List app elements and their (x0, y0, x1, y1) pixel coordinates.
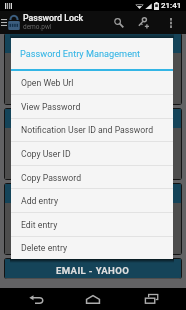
staticText: Open Web Url (21, 78, 74, 88)
staticText: Notification User ID and Password (21, 125, 154, 135)
staticText: Edit entry (21, 220, 58, 230)
button[interactable]: View Password (11, 95, 173, 119)
button[interactable]: Add entry (11, 189, 173, 213)
staticText: Copy User ID (21, 149, 71, 159)
button[interactable]: Edit entry (11, 213, 173, 237)
button[interactable]: EMAIL - YAHOO (4, 258, 182, 279)
button[interactable]: Search (106, 11, 131, 34)
staticText: WORK - GMAIL (58, 40, 128, 51)
button[interactable]: More options (156, 11, 186, 34)
button[interactable]: BANK - ONLINE (4, 183, 182, 255)
button[interactable]: Home (71, 288, 115, 310)
staticText: •••••••• (12, 72, 34, 81)
staticText: user@example.com (12, 209, 83, 218)
staticText: HOME ROUTER (58, 115, 128, 126)
staticText: View Password (21, 102, 81, 112)
staticText: Copy Password (21, 173, 82, 183)
button[interactable]: Delete entry (11, 236, 173, 260)
staticText: •••••••• (12, 147, 34, 156)
staticText: user@example.com (12, 134, 83, 143)
button[interactable]: Recent apps (129, 288, 173, 310)
staticText: Password Lock (23, 13, 84, 23)
staticText: BANK - ONLINE (57, 190, 130, 201)
button[interactable]: Open navigation drawer (0, 11, 8, 34)
staticText: Add entry (21, 196, 58, 206)
button[interactable]: HOME ROUTER (4, 108, 182, 180)
staticText: •••••••• (12, 222, 34, 231)
staticText: Password Entry Management (20, 48, 141, 59)
button[interactable]: Copy Password (11, 166, 173, 190)
button[interactable]: Back (14, 288, 58, 310)
staticText: demo.pwl (23, 23, 52, 31)
button[interactable]: Notification User ID and Password (11, 118, 173, 142)
button[interactable]: Copy User ID (11, 142, 173, 166)
button[interactable]: WORK - GMAIL (4, 33, 182, 105)
staticText: Delete entry (21, 243, 68, 253)
staticText: 21:41 (161, 1, 182, 10)
button[interactable]: Add password entry (131, 11, 156, 34)
staticText: EMAIL - YAHOO (56, 265, 130, 276)
button[interactable]: Open Web Url (11, 71, 173, 95)
